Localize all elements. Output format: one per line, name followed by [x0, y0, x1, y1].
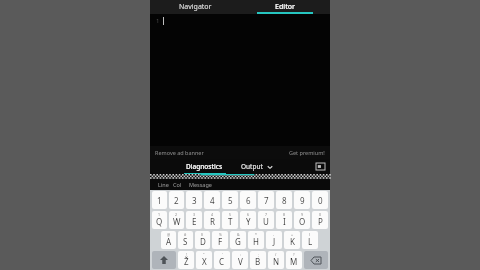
staticText: 0	[319, 212, 322, 217]
button[interactable]: 0	[312, 211, 328, 229]
button[interactable]: *	[248, 231, 264, 249]
button[interactable]: Get premium!	[289, 149, 325, 156]
staticText: Ž	[184, 256, 189, 267]
staticText: V	[238, 256, 243, 267]
staticText: (	[309, 232, 311, 237]
staticText: 9	[301, 212, 304, 217]
staticText: 5	[229, 212, 232, 217]
button[interactable]: 2	[169, 191, 184, 209]
staticText: 3	[192, 195, 197, 206]
button[interactable]: /	[268, 251, 284, 269]
button[interactable]: 3	[186, 191, 202, 209]
staticText: Editor	[275, 2, 296, 12]
button[interactable]: Shift	[152, 251, 176, 269]
staticText: '	[222, 252, 223, 257]
button[interactable]: 8	[276, 191, 292, 209]
staticText: 8	[282, 195, 287, 206]
staticText: G	[235, 236, 241, 247]
button[interactable]: "	[196, 251, 212, 269]
staticText: Q	[156, 216, 163, 227]
staticText: ?	[293, 252, 295, 257]
button[interactable]: 8	[276, 211, 292, 229]
staticText: !	[186, 252, 187, 257]
staticText: I	[283, 216, 286, 227]
button[interactable]: 4	[204, 191, 220, 209]
staticText: 3	[193, 212, 196, 217]
button[interactable]: 9	[294, 191, 310, 209]
button[interactable]: &	[230, 231, 246, 249]
staticText: U	[263, 216, 269, 227]
staticText: 8	[283, 212, 286, 217]
staticText: W	[173, 216, 181, 227]
button[interactable]: ;	[250, 251, 266, 269]
staticText: N	[273, 256, 280, 267]
staticText: Navigator	[179, 2, 212, 12]
button[interactable]: '	[214, 251, 230, 269]
button[interactable]: 6	[240, 211, 256, 229]
button[interactable]: 6	[240, 191, 256, 209]
staticText: B	[255, 256, 261, 267]
staticText: M	[290, 256, 298, 267]
staticText: Line	[158, 181, 169, 188]
staticText: 7	[264, 195, 269, 206]
staticText: 4	[210, 195, 215, 206]
staticText: D	[200, 236, 206, 247]
button[interactable]: #	[178, 231, 193, 249]
button[interactable]: 5	[222, 191, 238, 209]
staticText: /	[275, 252, 277, 257]
button[interactable]: 5	[222, 211, 238, 229]
button[interactable]: Backspace	[304, 251, 328, 269]
staticText: F	[218, 236, 223, 247]
button[interactable]: Editor	[240, 0, 330, 14]
button[interactable]: (	[302, 231, 318, 249]
staticText: Message	[189, 181, 212, 188]
button[interactable]: 1	[152, 211, 167, 229]
staticText: 4	[211, 212, 214, 217]
button[interactable]: 2	[169, 211, 184, 229]
staticText: 6	[246, 195, 251, 206]
staticText: Y	[246, 216, 251, 227]
button[interactable]: 4	[204, 211, 220, 229]
button[interactable]: Remove ad banner	[155, 149, 204, 156]
button[interactable]: $	[195, 231, 210, 249]
staticText: P	[318, 216, 323, 227]
staticText: E	[192, 216, 197, 227]
button[interactable]: !	[178, 251, 194, 269]
button[interactable]: 3	[186, 211, 202, 229]
staticText: $	[201, 232, 204, 237]
staticText: 7	[265, 212, 268, 217]
staticText: *	[255, 232, 257, 237]
staticText: @	[167, 232, 171, 237]
staticText: T	[228, 216, 233, 227]
button[interactable]: Expand output	[316, 163, 325, 170]
button[interactable]: -	[266, 231, 282, 249]
button[interactable]: +	[284, 231, 300, 249]
button[interactable]: Diagnostics	[182, 159, 227, 174]
button[interactable]: 7	[258, 211, 274, 229]
button[interactable]: %	[212, 231, 228, 249]
staticText: S	[183, 236, 188, 247]
button[interactable]: 1	[152, 191, 167, 209]
staticText: H	[253, 236, 259, 247]
button[interactable]: Output	[239, 159, 275, 174]
staticText: Diagnostics	[186, 162, 223, 171]
staticText: J	[273, 236, 276, 247]
button[interactable]: 7	[258, 191, 274, 209]
staticText: #	[184, 232, 187, 237]
button[interactable]: Navigator	[150, 0, 240, 14]
button[interactable]: ?	[286, 251, 302, 269]
staticText: Col	[173, 181, 182, 188]
staticText: %	[219, 232, 222, 237]
button[interactable]: @	[161, 231, 176, 249]
button[interactable]: 9	[294, 211, 310, 229]
staticText: L	[308, 236, 313, 247]
button[interactable]: 0	[312, 191, 328, 209]
staticText: &	[237, 232, 240, 237]
staticText: 9	[300, 195, 305, 206]
staticText: C	[219, 256, 225, 267]
button[interactable]: :	[232, 251, 248, 269]
staticText: 1	[158, 212, 161, 217]
staticText: 1	[156, 17, 160, 25]
staticText: K	[290, 236, 295, 247]
staticText: Output	[241, 162, 263, 171]
